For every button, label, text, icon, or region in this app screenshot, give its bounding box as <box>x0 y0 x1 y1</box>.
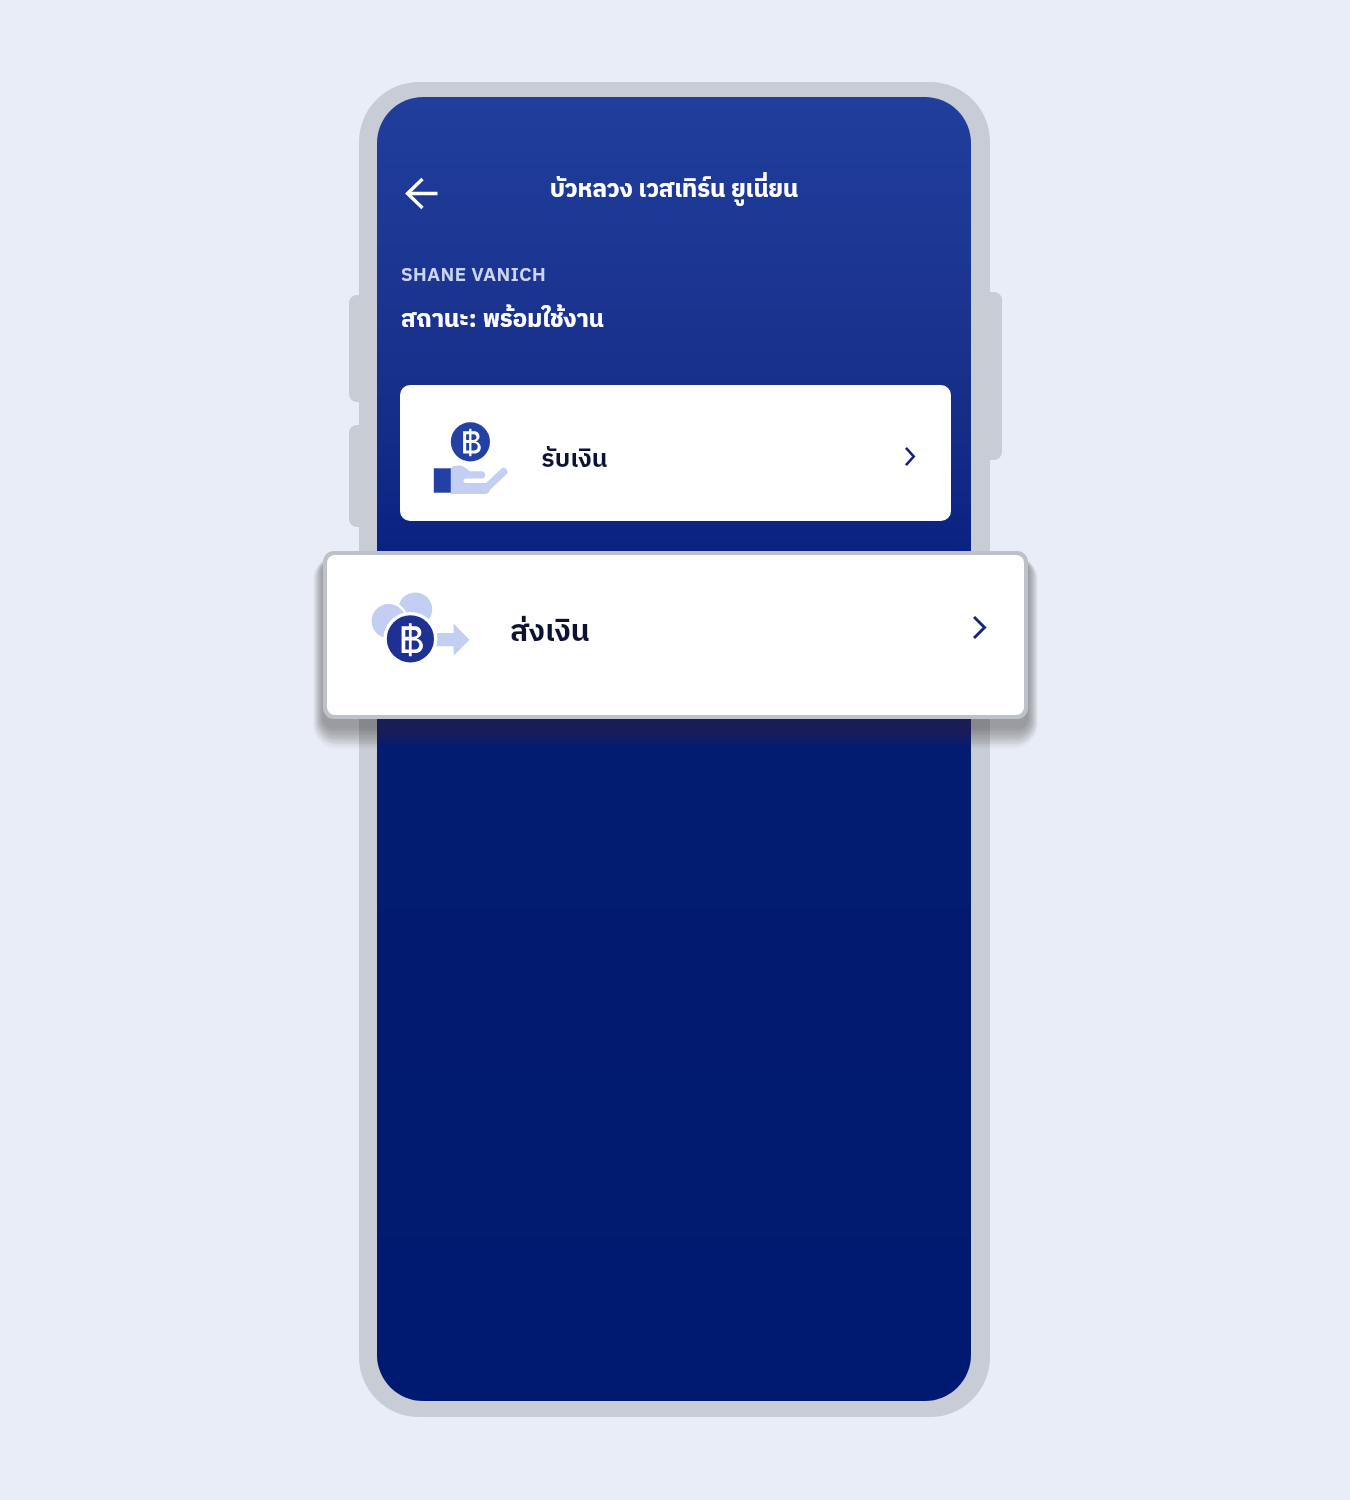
button[interactable]: Back <box>393 165 449 221</box>
staticText: รับเงิน <box>541 439 608 480</box>
staticText: สถานะ: พร้อมใช้งาน <box>401 300 604 340</box>
button[interactable]: ส่งเงิน <box>327 555 1024 715</box>
staticText: ส่งเงิน <box>510 608 590 658</box>
button[interactable]: รับเงิน <box>400 385 951 521</box>
staticText: SHANE VANICH <box>401 260 547 291</box>
staticText: บัวหลวง เวสเทิร์น ยูเนี่ยน <box>377 170 971 210</box>
